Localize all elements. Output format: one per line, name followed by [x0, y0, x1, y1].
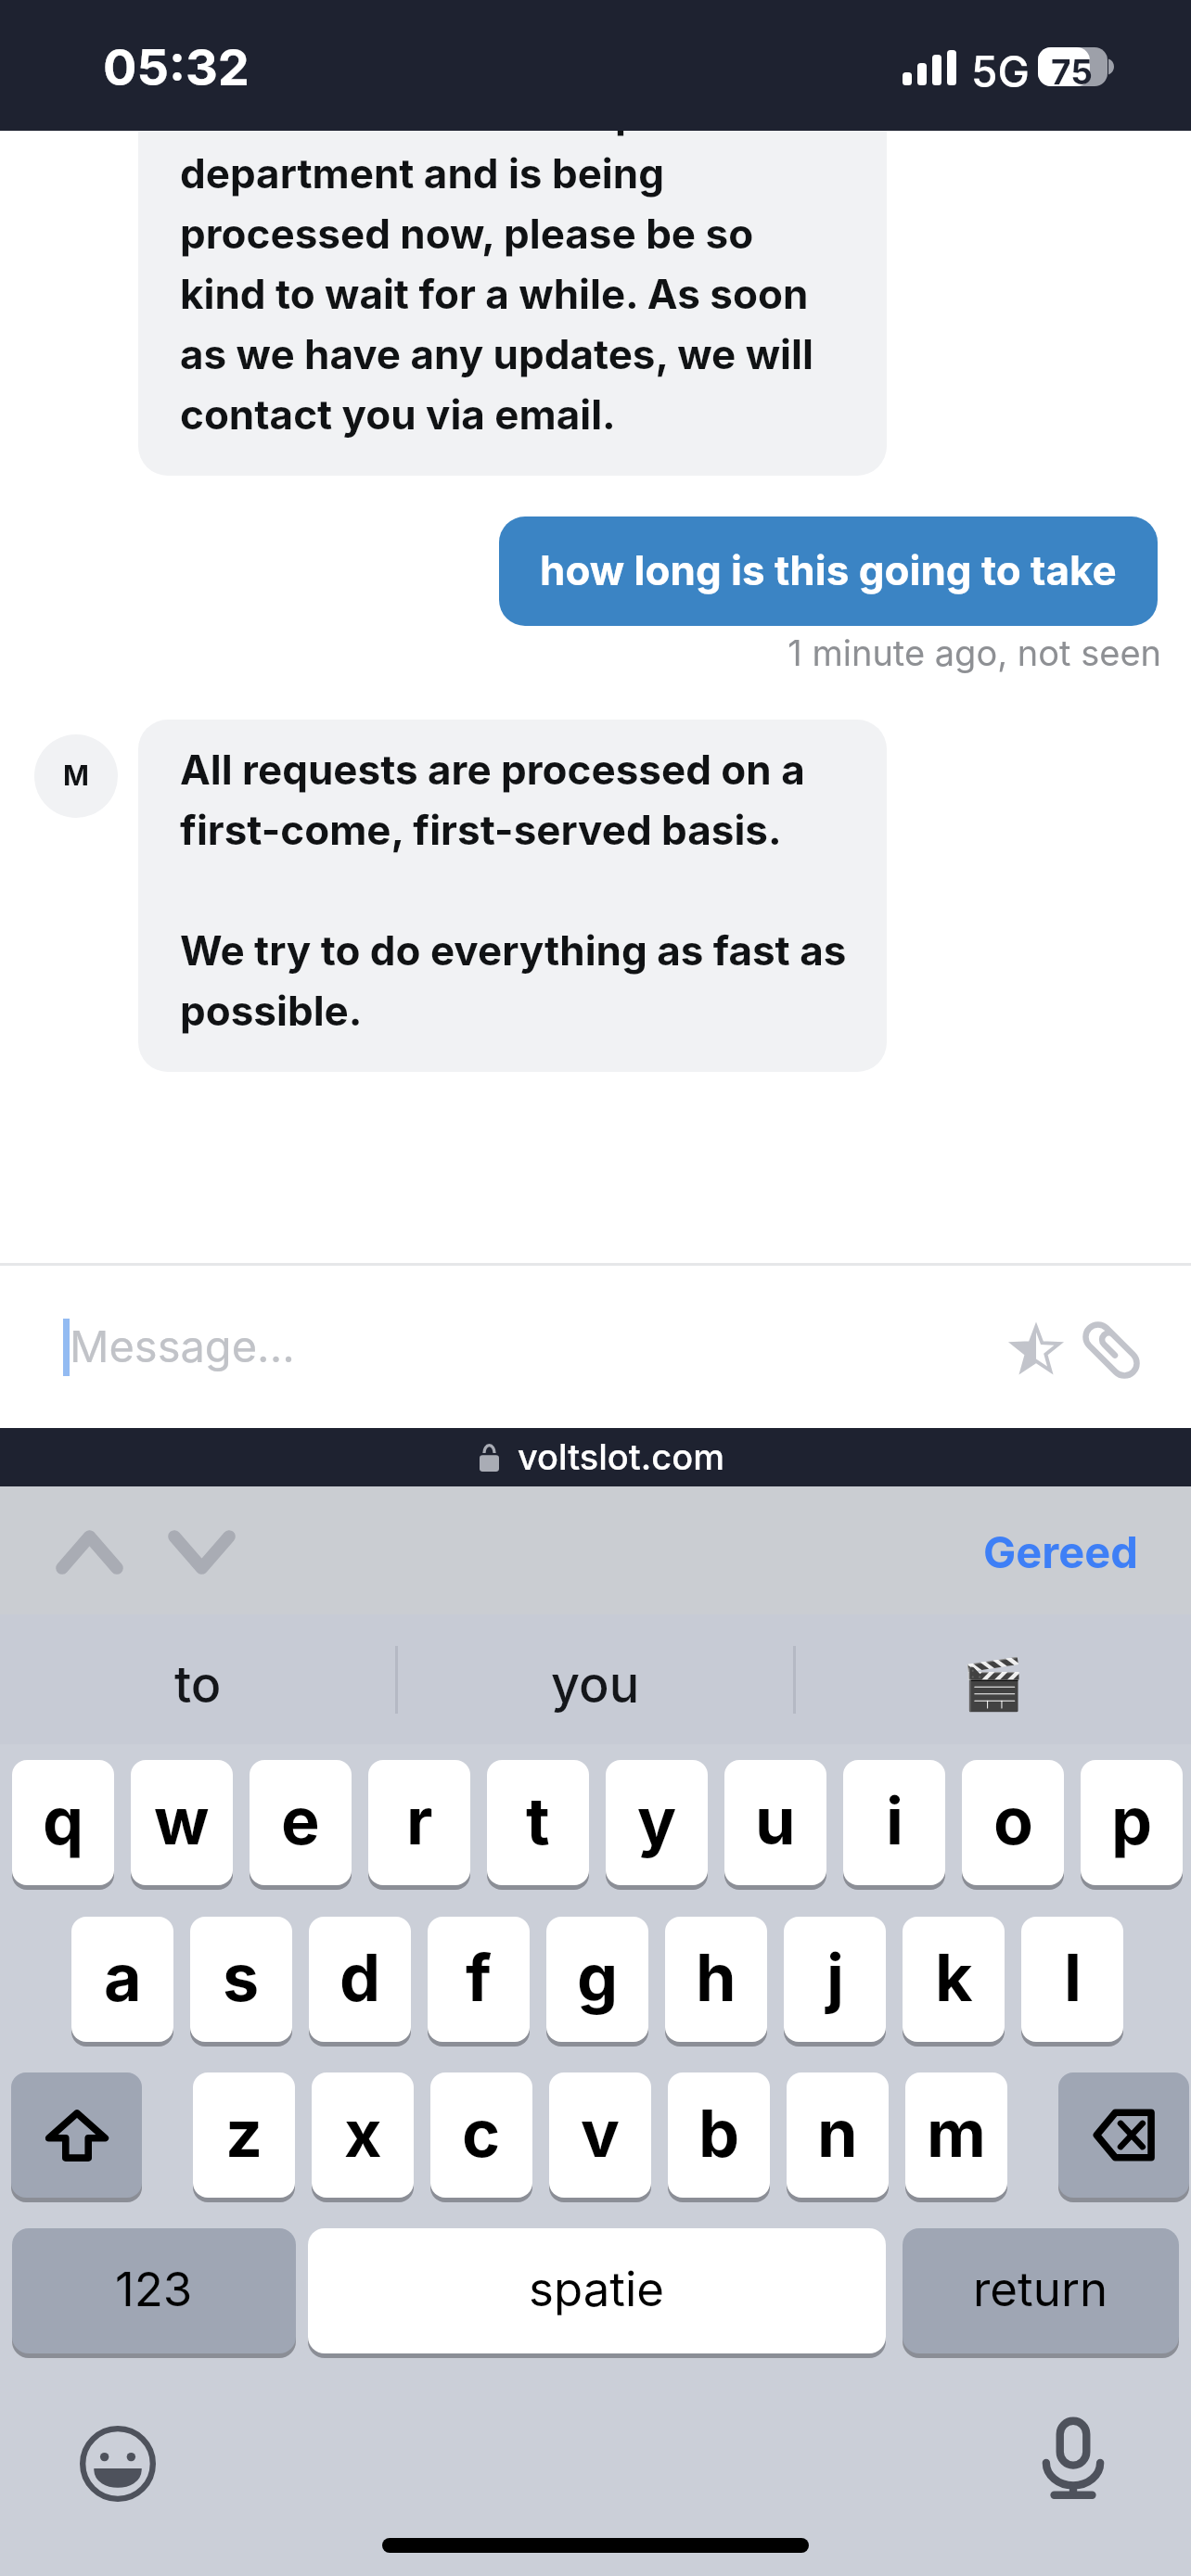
button[interactable]: p department and is being processed now,…: [138, 64, 887, 476]
button[interactable]: return: [903, 2228, 1179, 2353]
staticText: 75: [1051, 51, 1093, 93]
staticText: k: [935, 1938, 973, 2017]
staticText: c: [462, 2094, 501, 2173]
button[interactable]: to: [0, 1614, 395, 1744]
staticText: Gereed: [983, 1525, 1138, 1578]
button[interactable]: how long is this going to take: [499, 516, 1158, 626]
button[interactable]: l: [1021, 1917, 1123, 2042]
staticText: p department and is being processed now,…: [180, 88, 813, 440]
button[interactable]: o: [962, 1760, 1064, 1885]
button[interactable]: Shift: [11, 2072, 142, 2198]
staticText: x: [344, 2094, 382, 2173]
button[interactable]: Emoji: [80, 2426, 156, 2502]
button[interactable]: e: [250, 1760, 352, 1885]
staticText: 5G: [971, 45, 1030, 97]
staticText: q: [43, 1781, 84, 1860]
staticText: r: [406, 1781, 433, 1860]
staticText: y: [637, 1781, 677, 1860]
staticText: g: [577, 1938, 619, 2017]
staticText: 123: [115, 2261, 193, 2318]
button[interactable]: All requests are processed on a first-co…: [138, 720, 887, 1072]
button[interactable]: w: [131, 1760, 233, 1885]
button[interactable]: Dictate: [1035, 2418, 1111, 2500]
button[interactable]: r: [368, 1760, 470, 1885]
button[interactable]: n: [787, 2072, 889, 2198]
button[interactable]: x: [312, 2072, 414, 2198]
staticText: to: [174, 1654, 222, 1715]
button[interactable]: j: [784, 1917, 886, 2042]
button[interactable]: y: [606, 1760, 708, 1885]
staticText: d: [339, 1938, 381, 2017]
staticText: j: [826, 1938, 844, 2017]
button[interactable]: u: [724, 1760, 826, 1885]
staticText: w: [154, 1781, 210, 1860]
staticText: b: [698, 2094, 740, 2173]
staticText: v: [581, 2094, 620, 2173]
staticText: u: [755, 1781, 796, 1860]
button[interactable]: you: [398, 1614, 793, 1744]
button[interactable]: Next field: [162, 1512, 241, 1591]
staticText: return: [973, 2261, 1108, 2318]
button[interactable]: h: [665, 1917, 767, 2042]
staticText: m: [927, 2094, 986, 2173]
button[interactable]: g: [546, 1917, 648, 2042]
button[interactable]: 123: [12, 2228, 296, 2353]
button[interactable]: a: [71, 1917, 173, 2042]
button[interactable]: Backspace: [1058, 2072, 1189, 2198]
staticText: how long is this going to take: [540, 545, 1117, 594]
button[interactable]: f: [428, 1917, 530, 2042]
staticText: you: [551, 1654, 640, 1715]
staticText: s: [223, 1938, 260, 2017]
staticText: Message...: [70, 1320, 295, 1372]
staticText: 1 minute ago, not seen: [0, 631, 1161, 674]
button[interactable]: 🎬: [796, 1614, 1191, 1744]
staticText: a: [104, 1938, 142, 2017]
staticText: n: [817, 2094, 858, 2173]
button[interactable]: q: [12, 1760, 114, 1885]
button[interactable]: t: [487, 1760, 589, 1885]
button[interactable]: c: [430, 2072, 532, 2198]
button[interactable]: spatie: [308, 2228, 886, 2353]
button[interactable]: s: [190, 1917, 292, 2042]
staticText: f: [466, 1938, 492, 2017]
button[interactable]: Previous field: [50, 1512, 129, 1591]
button[interactable]: i: [843, 1760, 945, 1885]
button[interactable]: b: [668, 2072, 770, 2198]
button[interactable]: Favorite: [993, 1307, 1079, 1393]
staticText: i: [886, 1781, 903, 1860]
button[interactable]: Attach file: [1069, 1307, 1154, 1393]
button[interactable]: Message...: [37, 1282, 955, 1411]
button[interactable]: m: [905, 2072, 1007, 2198]
staticText: p: [1111, 1781, 1153, 1860]
staticText: voltslot.com: [518, 1435, 724, 1478]
staticText: M: [63, 759, 89, 792]
staticText: o: [993, 1781, 1033, 1860]
staticText: t: [526, 1781, 550, 1860]
button[interactable]: v: [549, 2072, 651, 2198]
staticText: l: [1064, 1938, 1082, 2017]
button[interactable]: d: [309, 1917, 411, 2042]
button[interactable]: M: [34, 734, 118, 818]
staticText: e: [281, 1781, 320, 1860]
staticText: 05:32: [103, 37, 250, 97]
staticText: h: [696, 1938, 736, 2017]
button[interactable]: z: [193, 2072, 295, 2198]
button[interactable]: p: [1081, 1760, 1183, 1885]
staticText: spatie: [529, 2261, 665, 2318]
staticText: All requests are processed on a first-co…: [180, 745, 847, 1036]
staticText: 🎬: [962, 1655, 1025, 1714]
button[interactable]: Gereed: [968, 1516, 1153, 1588]
button[interactable]: k: [903, 1917, 1005, 2042]
staticText: z: [225, 2094, 263, 2173]
